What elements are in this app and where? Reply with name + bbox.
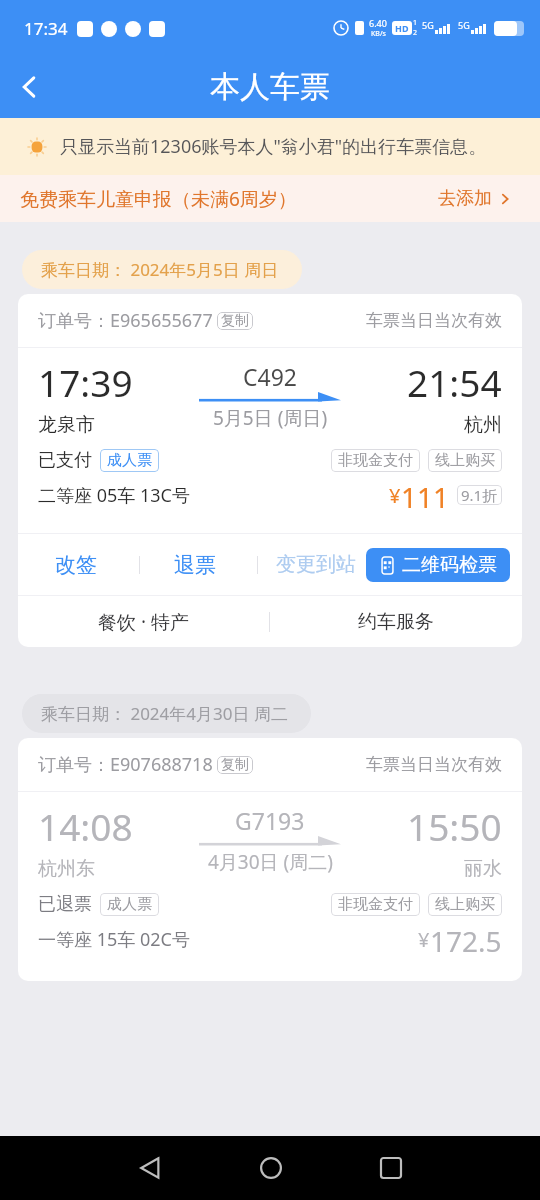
button[interactable]: 餐饮 · 特产 (18, 596, 269, 647)
button[interactable]: 订单号：E965655677 (18, 294, 522, 647)
staticText: 订单号：E907688718 (38, 752, 213, 777)
staticText: 172.5 (430, 922, 502, 956)
staticText: 车票当日当次有效 (366, 310, 502, 331)
staticText: 二等座 05车 13C号 (38, 483, 190, 508)
button[interactable]: 约车服务 (270, 596, 522, 647)
staticText: 变更到站 (276, 552, 356, 577)
staticText: 15:50 (407, 801, 502, 851)
staticText: 去添加 (438, 187, 492, 210)
staticText: KB/s (371, 29, 386, 39)
staticText: 乘车日期： 2024年5月5日 周日 (41, 258, 279, 281)
staticText: 线上购买 (435, 451, 495, 470)
staticText: 杭州 (464, 413, 502, 437)
button[interactable]: 免费乘车儿童申报（未满6周岁） (0, 175, 540, 222)
staticText: 非现金支付 (338, 451, 413, 470)
staticText: 复制 (221, 756, 249, 774)
staticText: G7193 (235, 805, 305, 836)
staticText: HD (395, 22, 409, 34)
staticText: 已退票 (38, 893, 92, 916)
staticText: 线上购买 (435, 895, 495, 914)
button[interactable]: 改签 (55, 552, 97, 578)
button[interactable]: 订单号：E907688718 (18, 738, 522, 981)
button[interactable]: Back (128, 1146, 172, 1190)
staticText: 丽水 (464, 857, 502, 881)
staticText: ¥ (418, 926, 430, 953)
staticText: 只显示当前12306账号本人"翁小君"的出行车票信息。 (60, 134, 487, 159)
staticText: 一等座 15车 02C号 (38, 927, 190, 952)
staticText: 4月30日 (周二) (208, 849, 333, 875)
button[interactable]: Recents (369, 1146, 413, 1190)
staticText: 17:39 (38, 357, 133, 407)
staticText: 成人票 (107, 451, 152, 470)
button[interactable]: Home (249, 1146, 293, 1190)
staticText: 17:34 (24, 17, 68, 40)
staticText: 二维码检票 (402, 553, 497, 577)
staticText: 免费乘车儿童申报（未满6周岁） (20, 186, 297, 212)
staticText: 车票当日当次有效 (366, 754, 502, 775)
staticText: 成人票 (107, 895, 152, 914)
staticText: 复制 (221, 312, 249, 330)
staticText: 本人车票 (210, 68, 330, 106)
staticText: 111 (401, 478, 450, 512)
button[interactable]: 复制 (217, 312, 253, 330)
staticText: ¥ (389, 482, 401, 509)
staticText: 已支付 (38, 449, 92, 472)
staticText: 21:54 (407, 357, 502, 407)
button[interactable]: Back (0, 56, 58, 118)
button[interactable]: 二维码检票 (366, 548, 510, 582)
staticText: 龙泉市 (38, 413, 95, 437)
staticText: 14:08 (38, 801, 133, 851)
staticText: 约车服务 (358, 610, 434, 634)
staticText: 5G (458, 19, 470, 31)
staticText: C492 (243, 361, 298, 392)
staticText: 5G (422, 19, 434, 31)
button[interactable]: 复制 (217, 756, 253, 774)
staticText: 5月5日 (周日) (213, 405, 328, 431)
staticText: 6.40 (369, 17, 387, 29)
staticText: 2 (413, 28, 418, 38)
button[interactable]: 退票 (174, 552, 216, 578)
staticText: 9.1折 (461, 485, 498, 505)
staticText: 杭州东 (38, 857, 95, 881)
staticText: 餐饮 · 特产 (98, 609, 189, 635)
staticText: 订单号：E965655677 (38, 308, 213, 333)
staticText: 1 (413, 18, 418, 28)
staticText: 乘车日期： 2024年4月30日 周二 (41, 702, 288, 725)
staticText: 非现金支付 (338, 895, 413, 914)
